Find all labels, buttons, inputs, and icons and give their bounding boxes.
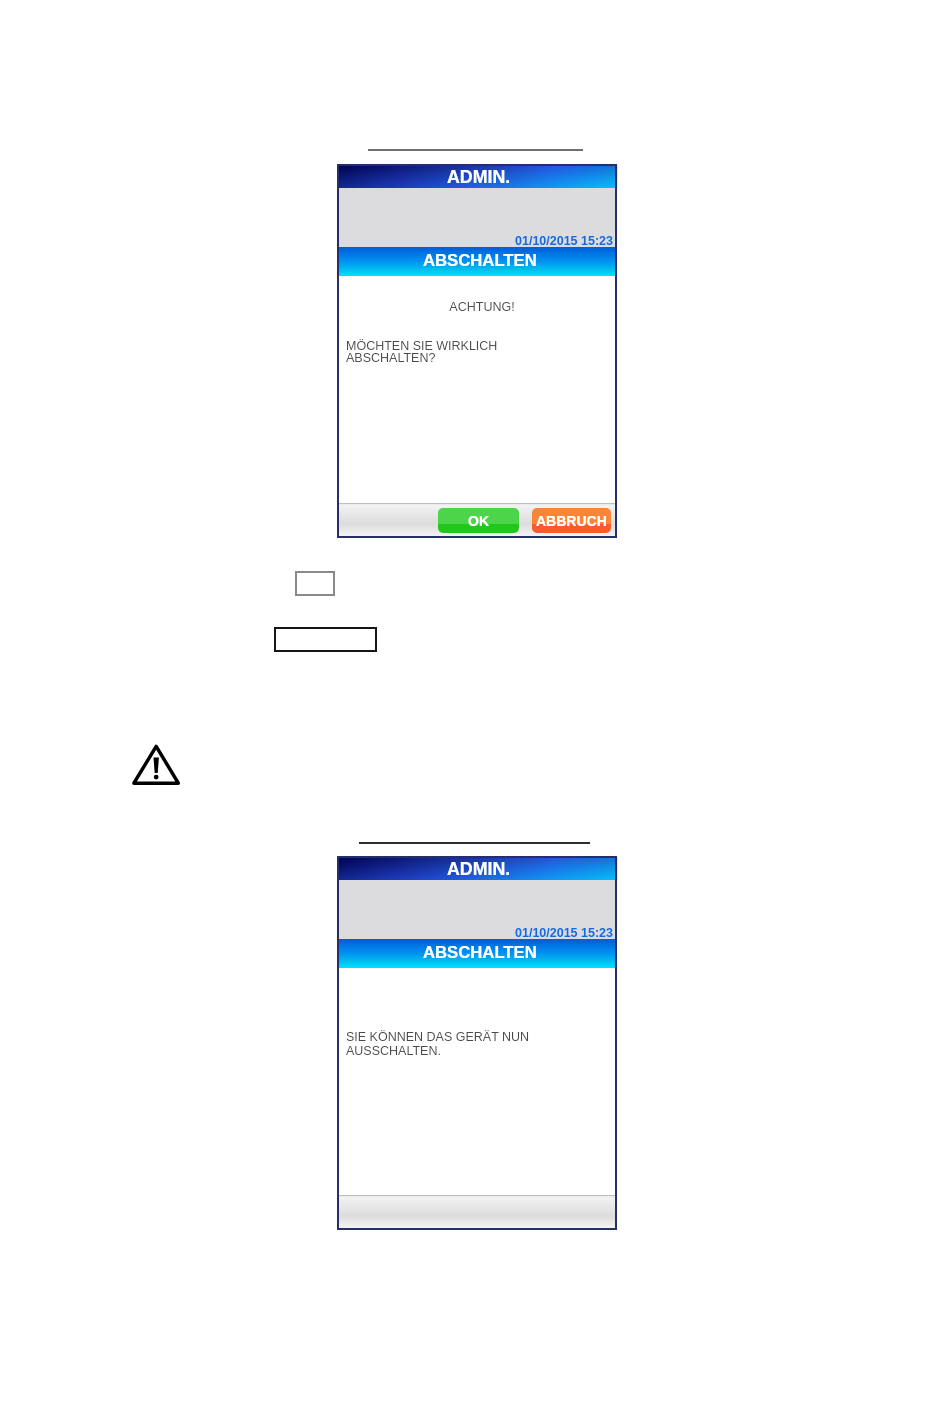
staticText: OK — [468, 513, 489, 529]
staticText: AUSSCHALTEN. — [346, 1044, 441, 1058]
staticText: ABBRUCH — [536, 513, 607, 529]
staticText: ADMIN. — [447, 859, 511, 879]
button[interactable]: OK — [438, 508, 519, 533]
staticText: 01/10/2015 15:23 — [515, 926, 614, 940]
staticText: ADMIN. — [447, 167, 511, 187]
staticText: ABSCHALTEN? — [346, 351, 436, 365]
other: Warning — [133, 745, 179, 785]
staticText: 01/10/2015 15:23 — [515, 234, 614, 248]
staticText: SIE KÖNNEN DAS GERÄT NUN — [346, 1030, 530, 1044]
button[interactable]: ADMIN menu — [338, 165, 616, 188]
staticText: ABSCHALTEN — [423, 943, 537, 962]
staticText: MÖCHTEN SIE WIRKLICH — [346, 339, 498, 353]
staticText: ACHTUNG! — [343, 300, 621, 314]
button[interactable]: ADMIN menu — [338, 857, 616, 880]
staticText: ABSCHALTEN — [423, 251, 537, 270]
button[interactable]: ABBRUCH — [532, 508, 611, 533]
